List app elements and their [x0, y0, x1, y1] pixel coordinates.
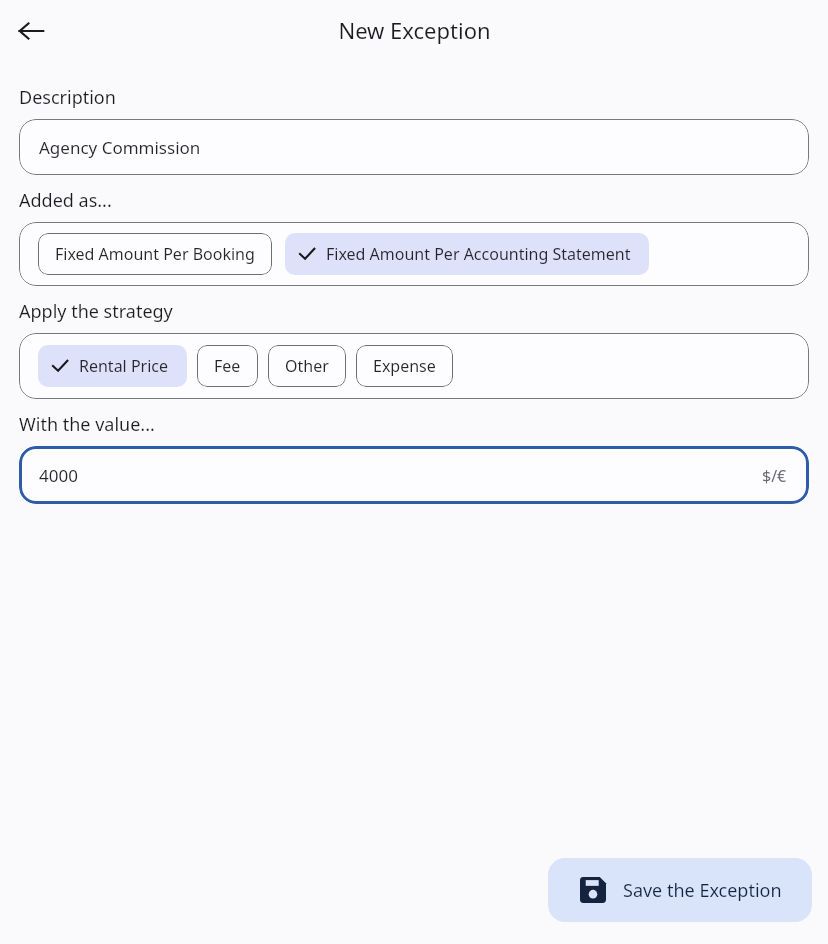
staticText: Fee — [214, 355, 241, 377]
staticText: Agency Commission — [39, 136, 201, 159]
button[interactable]: Fixed Amount Per Booking — [38, 233, 272, 275]
staticText: New Exception — [338, 15, 491, 45]
button[interactable]: Save the Exception — [548, 858, 812, 922]
button[interactable]: Other — [268, 345, 346, 387]
button[interactable]: 4000 — [19, 446, 809, 504]
staticText: Fixed Amount Per Accounting Statement — [326, 243, 631, 265]
staticText: With the value... — [19, 412, 155, 437]
staticText: Other — [285, 355, 329, 377]
button[interactable]: Rental Price — [38, 345, 187, 387]
button[interactable]: Rental Price — [19, 333, 809, 399]
button[interactable]: Back — [9, 9, 53, 53]
staticText: 4000 — [39, 464, 78, 487]
staticText: Apply the strategy — [19, 299, 173, 324]
button[interactable]: Agency Commission — [19, 119, 809, 175]
button[interactable]: Fixed Amount Per Accounting Statement — [285, 233, 649, 275]
staticText: Expense — [373, 355, 436, 377]
staticText: Save the Exception — [623, 878, 782, 903]
staticText: Fixed Amount Per Booking — [55, 243, 255, 265]
staticText: $/€ — [762, 465, 787, 487]
button[interactable]: Fee — [197, 345, 258, 387]
button[interactable]: Fixed Amount Per Booking — [19, 222, 809, 286]
staticText: Added as... — [19, 188, 112, 213]
staticText: Rental Price — [79, 355, 169, 377]
staticText: Description — [19, 85, 116, 110]
button[interactable]: Expense — [356, 345, 453, 387]
